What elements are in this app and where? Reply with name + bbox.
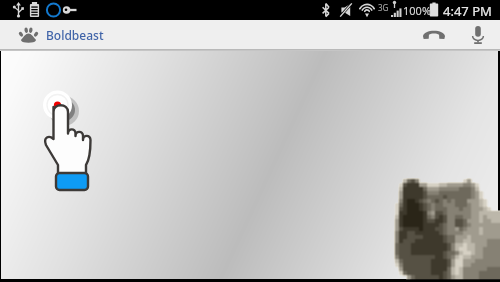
button[interactable]: Microphone xyxy=(465,20,491,49)
staticText: 3G xyxy=(378,2,389,13)
button[interactable]: Boldbeast xyxy=(17,27,104,43)
staticText: 4:47 PM xyxy=(443,2,492,20)
staticText: Boldbeast xyxy=(46,27,104,43)
staticText: 100% xyxy=(403,3,432,18)
button[interactable]: End call xyxy=(420,20,448,49)
